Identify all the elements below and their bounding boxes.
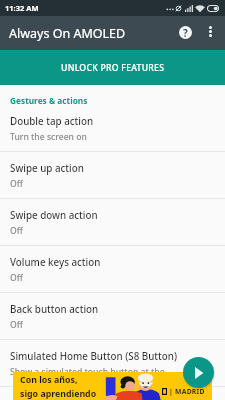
staticText: Off: [10, 272, 23, 284]
staticText: Simulated Home Button (S8 Button): [10, 350, 178, 363]
button[interactable]: Volume keys action: [0, 246, 225, 293]
button[interactable]: Simulated Home Button (S8 Button): [0, 340, 225, 387]
button[interactable]: Play: [183, 357, 214, 388]
staticText: Off: [10, 319, 23, 331]
staticText: Swipe down action: [10, 209, 98, 222]
button[interactable]: Swipe up action: [0, 152, 225, 199]
button[interactable]: Swipe down action: [0, 199, 225, 246]
button[interactable]: Double tap action: [0, 105, 225, 152]
staticText: Turn the screen on: [10, 131, 87, 143]
staticText: Con los años,: [20, 374, 78, 386]
staticText: Double tap action: [10, 115, 94, 128]
staticText: sigo aprendiendo: [20, 388, 97, 400]
button[interactable]: Help: [174, 21, 197, 44]
button[interactable]: More options: [199, 20, 222, 43]
staticText: UNLOCK PRO FEATURES: [61, 62, 165, 74]
staticText: Always On AMOLED: [9, 25, 126, 42]
staticText: Gestures & actions: [10, 95, 88, 106]
staticText: Volume keys action: [10, 256, 101, 269]
button[interactable]: UNLOCK PRO FEATURES: [0, 50, 225, 85]
staticText: Show a simulated touch button at the: [10, 366, 165, 378]
staticText: Swipe up action: [10, 162, 84, 175]
staticText: ?: [183, 26, 188, 40]
staticText: | MADRID: [169, 387, 205, 396]
button[interactable]: Con los años,: [13, 372, 212, 400]
button[interactable]: Back button action: [0, 293, 225, 340]
staticText: Off: [10, 225, 23, 237]
staticText: 11:32 AM: [5, 3, 39, 13]
staticText: Off: [10, 178, 23, 190]
staticText: Back button action: [10, 303, 99, 316]
